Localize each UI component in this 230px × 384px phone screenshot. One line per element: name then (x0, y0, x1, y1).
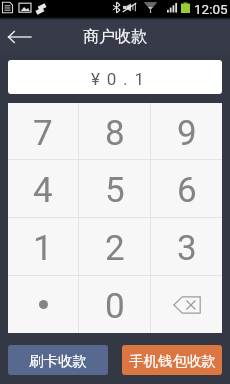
staticText: 刷卡收款 (29, 352, 87, 370)
button[interactable]: 7 (8, 103, 78, 159)
button[interactable]: 6 (151, 160, 222, 217)
button[interactable]: 2 (79, 218, 150, 275)
staticText: 商户收款 (83, 27, 147, 47)
button[interactable]: 3 (151, 218, 222, 275)
button[interactable]: 5 (79, 160, 150, 217)
staticText: 9 (177, 113, 197, 154)
staticText: 2 (105, 228, 125, 269)
staticText: 5 (105, 170, 125, 211)
button[interactable]: Back (0, 20, 38, 53)
button[interactable]: 9 (151, 103, 222, 159)
button[interactable]: 8 (79, 103, 150, 159)
button[interactable]: 4 (8, 160, 78, 217)
staticText: 1 (33, 228, 53, 269)
staticText: 6 (177, 170, 197, 211)
button[interactable]: 1 (8, 218, 78, 275)
button[interactable]: Backspace (151, 276, 222, 333)
staticText: 8 (105, 113, 125, 154)
staticText: 3 (177, 228, 197, 269)
button[interactable]: ¥ 0 . 1 (8, 60, 222, 94)
staticText: ¥ 0 . 1 (91, 69, 146, 89)
button[interactable]: 0 (79, 276, 150, 333)
button[interactable]: 手机钱包收款 (122, 345, 222, 375)
button[interactable]: 刷卡收款 (8, 345, 108, 375)
staticText: 7 (33, 113, 53, 154)
staticText: 0 (105, 286, 125, 327)
staticText: 手机钱包收款 (129, 352, 216, 370)
button[interactable]: Decimal point (8, 276, 78, 333)
staticText: 12:05 (194, 1, 228, 17)
staticText: 4 (33, 170, 53, 211)
